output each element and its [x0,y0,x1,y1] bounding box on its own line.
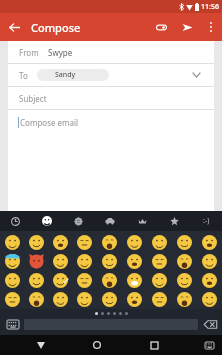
button[interactable]: Switch keyboard [4,318,22,331]
staticText: Sandy [55,70,76,80]
button[interactable]: Emoji 14 [97,252,122,271]
staticText: Subject [19,93,47,104]
button[interactable]: Home [82,335,112,355]
button[interactable]: Emoji 20 [24,271,48,290]
button[interactable]: Emoji 21 [48,271,72,290]
button[interactable]: Emoji 1 [0,233,24,252]
button[interactable]: Emoji 10 [0,252,24,271]
button[interactable]: Emoji 16 [147,252,172,271]
button[interactable]: Emoji 15 [122,252,147,271]
button[interactable]: Emoji 33 [122,290,147,309]
button[interactable]: Emoji 22 [72,271,97,290]
staticText: Compose [31,20,81,35]
button[interactable]: Emoji 9 [197,233,222,252]
button[interactable]: More options [200,16,222,38]
button[interactable]: Smileys [31,211,62,231]
button[interactable]: Emoji 23 [97,271,122,290]
button[interactable]: Emoji 32 [97,290,122,309]
button[interactable]: Emoji 2 [24,233,48,252]
staticText: 11:56 [201,2,219,12]
button[interactable]: Emoji 4 [72,233,97,252]
button[interactable]: Emoji 5 [97,233,122,252]
staticText: From [19,47,39,58]
button[interactable]: Emoji 11 [24,252,48,271]
button[interactable]: Emoji 35 [172,290,197,309]
button[interactable]: Emoji 25 [147,271,172,290]
staticText: :-) [203,216,210,226]
button[interactable]: To [8,64,214,86]
button[interactable]: Symbols [158,211,190,231]
button[interactable]: Emoji 8 [172,233,197,252]
button[interactable]: Emoji 27 [197,271,222,290]
button[interactable]: Emoji 34 [147,290,172,309]
button[interactable]: Emoji 17 [172,252,197,271]
button[interactable]: Emoji 6 [122,233,147,252]
button[interactable]: Recent apps [139,335,169,355]
button[interactable]: Emoji 18 [197,252,222,271]
button[interactable]: Emoji 31 [72,290,97,309]
button[interactable]: Emoji 13 [72,252,97,271]
button[interactable]: Backspace [202,319,218,330]
button[interactable]: Subject [8,87,214,109]
button[interactable]: Emoji 19 [0,271,24,290]
button[interactable]: Change keyboard [196,335,222,355]
staticText: Swype [48,47,73,58]
button[interactable]: Compose email [8,110,214,211]
button[interactable]: Emoji 24 [122,271,147,290]
button[interactable]: Expand recipients [189,68,203,82]
button[interactable]: Recent [0,211,31,231]
button[interactable]: Nature [62,211,94,231]
button[interactable]: Emoticons [190,211,222,231]
staticText: To [19,70,28,81]
button[interactable]: Back [0,13,28,41]
button[interactable]: Emoji 12 [48,252,72,271]
button[interactable]: Emoji 3 [48,233,72,252]
button[interactable]: Objects [126,211,158,231]
button[interactable]: Emoji 36 [197,290,222,309]
button[interactable]: Emoji 26 [172,271,197,290]
button[interactable]: Send [174,14,200,40]
button[interactable]: Emoji 29 [24,290,48,309]
button[interactable]: From [8,41,214,63]
staticText: Compose email [20,117,79,128]
button[interactable]: Travel [94,211,126,231]
button[interactable]: Emoji 30 [48,290,72,309]
button[interactable]: Emoji 28 [0,290,24,309]
button[interactable]: Emoji 7 [147,233,172,252]
button[interactable]: Attach file [148,14,174,40]
button[interactable]: Back [26,335,56,355]
